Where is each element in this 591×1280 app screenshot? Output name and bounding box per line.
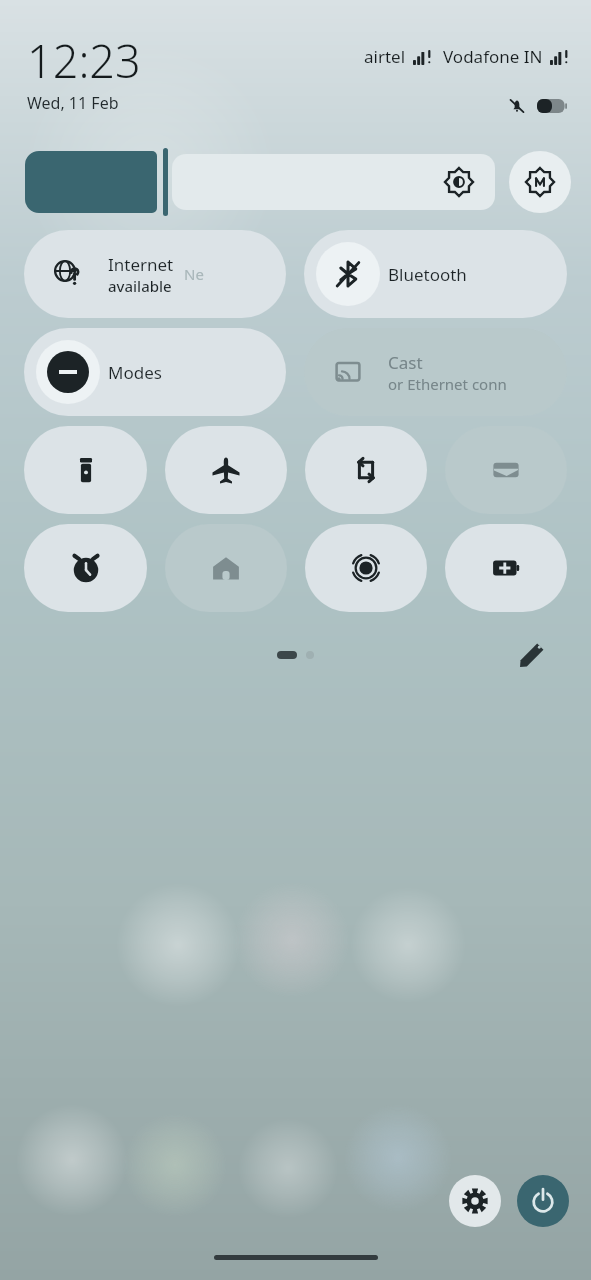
button[interactable]: Display mode — [509, 151, 571, 213]
button[interactable]: Alarm — [24, 524, 147, 612]
button[interactable]: Internet — [24, 230, 286, 318]
button[interactable]: Auto rotate — [305, 426, 427, 514]
staticText: Modes — [108, 361, 162, 384]
staticText: or Ethernet conn — [388, 374, 507, 394]
button[interactable]: Settings — [449, 1175, 501, 1227]
button[interactable]: Airplane mode — [165, 426, 287, 514]
button[interactable]: Home — [165, 524, 287, 612]
button[interactable]: Power — [517, 1175, 569, 1227]
button[interactable]: Bluetooth — [304, 230, 567, 318]
staticText: 12:23 — [27, 30, 141, 91]
button[interactable]: Wallet — [445, 426, 567, 514]
staticText: Wed, 11 Feb — [27, 92, 119, 114]
staticText: Ne — [184, 264, 204, 284]
staticText: airtel — [364, 45, 406, 68]
staticText: Cast — [388, 351, 423, 374]
button[interactable] — [25, 148, 495, 216]
staticText: Bluetooth — [388, 263, 467, 286]
button[interactable]: Modes — [24, 328, 286, 416]
staticText: Vodafone IN — [443, 45, 543, 68]
button[interactable]: Battery saver — [445, 524, 567, 612]
button[interactable]: Edit tiles — [515, 638, 549, 672]
button[interactable]: Record — [305, 524, 427, 612]
button[interactable]: Cast — [304, 328, 567, 416]
staticText: Internet — [108, 253, 174, 276]
staticText: available — [108, 276, 172, 296]
button[interactable]: Flashlight — [24, 426, 147, 514]
